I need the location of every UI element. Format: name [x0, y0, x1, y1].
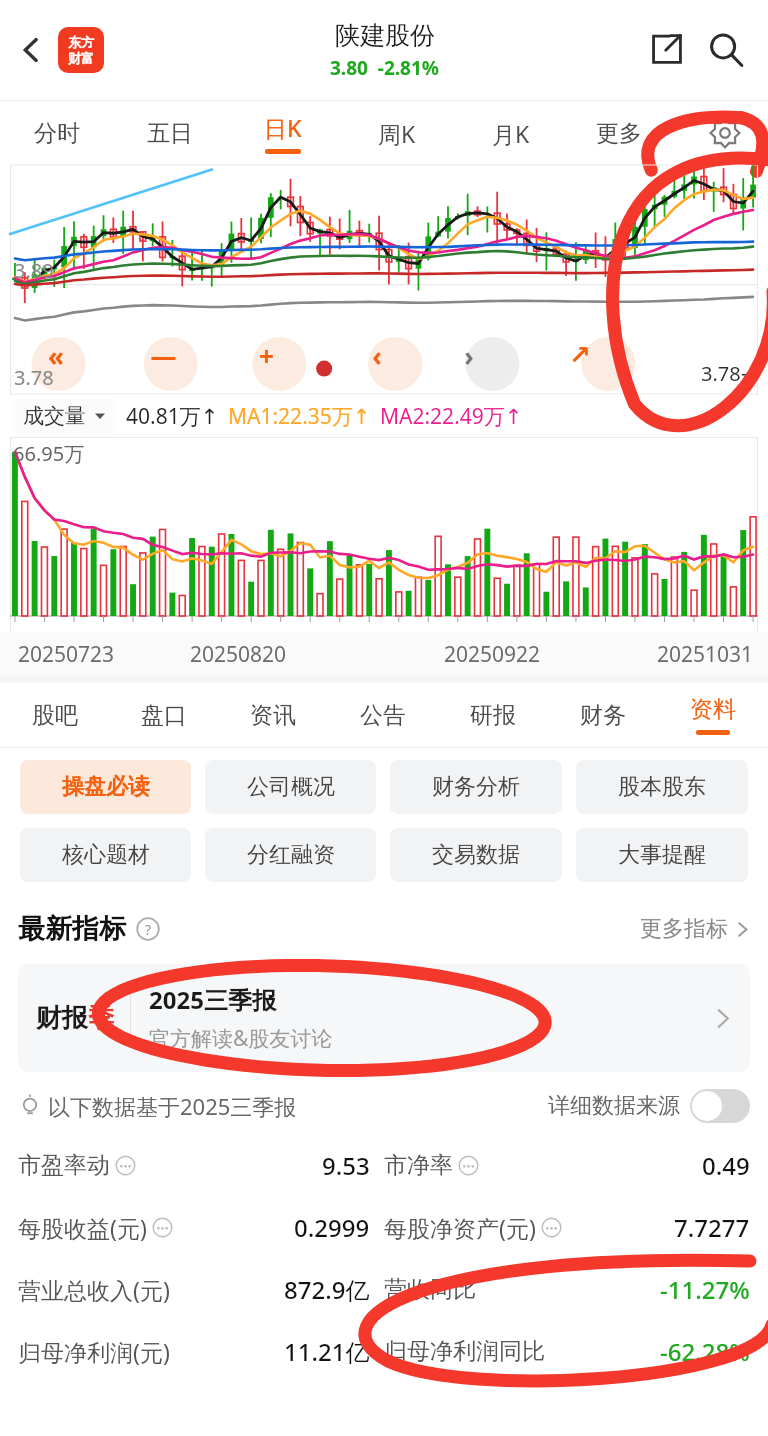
staticText: 以下数据基于2025三季报: [48, 1091, 297, 1121]
staticText: 股本股东: [618, 773, 706, 801]
button[interactable]: 月K: [454, 101, 568, 165]
staticText: 详细数据来源: [548, 1092, 680, 1120]
button[interactable]: 资讯: [218, 683, 328, 747]
button[interactable]: 资料: [658, 683, 768, 747]
staticText: 盘口: [141, 701, 187, 730]
button[interactable]: 财报: [18, 964, 750, 1072]
staticText: —: [150, 338, 177, 373]
staticText: 成交量: [23, 403, 86, 429]
staticText: 交易数据: [432, 841, 520, 869]
button[interactable]: Help: [135, 916, 161, 942]
button[interactable]: 分时: [0, 101, 113, 165]
button[interactable]: 股吧: [0, 683, 109, 747]
button[interactable]: Settings: [682, 101, 768, 165]
staticText: 五日: [147, 119, 193, 148]
button[interactable]: 财务: [548, 683, 658, 747]
button[interactable]: 公司概况: [205, 760, 376, 814]
staticText: 季: [88, 1002, 114, 1035]
staticText: 归母净利润(元): [18, 1336, 170, 1367]
staticText: 0.2999: [294, 1211, 370, 1244]
button[interactable]: 核心题材: [20, 828, 191, 882]
staticText: 研报: [470, 701, 516, 730]
button[interactable]: Chart control: [248, 337, 284, 373]
staticText: 大事提醒: [618, 841, 706, 869]
button[interactable]: 交易数据: [390, 828, 562, 882]
staticText: 财富: [68, 50, 94, 66]
button[interactable]: Chart control: [562, 337, 598, 373]
staticText: 公告: [360, 701, 406, 730]
button[interactable]: Back: [6, 25, 56, 75]
staticText: 市盈率动: [18, 1151, 110, 1180]
staticText: 20250820: [190, 640, 287, 669]
staticText: ↗: [569, 340, 591, 370]
staticText: 陕建股份: [335, 20, 435, 51]
button[interactable]: 周K: [340, 101, 454, 165]
staticText: 公司概况: [247, 773, 335, 801]
staticText: 20250922: [444, 640, 541, 669]
staticText: 市净率: [384, 1151, 453, 1180]
button[interactable]: 日K: [226, 101, 340, 165]
staticText: 3.78: [14, 364, 54, 391]
staticText: MA1:22.35万↑: [228, 402, 371, 431]
button[interactable]: 财务分析: [390, 760, 562, 814]
button[interactable]: 成交量: [12, 399, 116, 433]
staticText: 更多: [596, 119, 642, 148]
button[interactable]: 股本股东: [576, 760, 748, 814]
button[interactable]: Chart control: [359, 337, 395, 373]
button[interactable]: Chart control: [38, 337, 74, 373]
button[interactable]: 研报: [438, 683, 548, 747]
staticText: 官方解读&股友讨论: [149, 1024, 333, 1053]
staticText: 3.89: [14, 257, 54, 284]
staticText: ?: [145, 920, 152, 939]
staticText: 0.49: [702, 1149, 750, 1182]
staticText: 最新指标: [18, 912, 126, 946]
staticText: 20250723: [18, 640, 115, 669]
staticText: 财报: [36, 1002, 88, 1035]
staticText: 日K: [264, 112, 302, 143]
button[interactable]: 五日: [113, 101, 226, 165]
button[interactable]: Share: [638, 20, 696, 78]
button[interactable]: 大事提醒: [576, 828, 748, 882]
button[interactable]: 盘口: [109, 683, 218, 747]
staticText: 资料: [690, 695, 736, 724]
staticText: +: [259, 338, 274, 373]
staticText: 分红融资: [247, 841, 335, 869]
staticText: -62.28%: [660, 1335, 750, 1368]
staticText: 分时: [34, 119, 80, 148]
staticText: 核心题材: [62, 841, 150, 869]
staticText: 11.21亿: [284, 1335, 370, 1368]
staticText: 营业总收入(元): [18, 1274, 170, 1305]
button[interactable]: East Money logo: [58, 27, 104, 73]
staticText: 周K: [378, 118, 416, 149]
staticText: 872.9亿: [284, 1273, 370, 1306]
staticText: 财务: [580, 701, 626, 730]
button[interactable]: Search: [696, 20, 756, 80]
button[interactable]: 操盘必读: [20, 760, 191, 814]
button[interactable]: 公告: [328, 683, 438, 747]
staticText: 3.80 -2.81%: [330, 55, 439, 81]
staticText: 7.7277: [674, 1211, 750, 1244]
button[interactable]: Chart control: [145, 337, 181, 373]
button[interactable]: Toggle detailed data source: [690, 1089, 750, 1123]
button[interactable]: 更多指标: [640, 915, 750, 943]
staticText: 2025三季报: [149, 983, 276, 1016]
staticText: ‹: [372, 338, 382, 373]
staticText: 20251031: [657, 640, 754, 669]
button[interactable]: Chart control: [451, 337, 487, 373]
button[interactable]: 分红融资: [205, 828, 376, 882]
staticText: 资讯: [250, 701, 296, 730]
staticText: 操盘必读: [62, 773, 150, 801]
staticText: 每股收益(元): [18, 1212, 147, 1243]
staticText: «: [48, 338, 64, 373]
staticText: 营收同比: [384, 1275, 476, 1304]
staticText: ›: [464, 338, 474, 373]
staticText: 东方: [68, 34, 94, 50]
staticText: 更多指标: [640, 915, 728, 943]
staticText: 66.95万: [13, 440, 85, 467]
staticText: 股吧: [32, 701, 78, 730]
staticText: -11.27%: [660, 1273, 750, 1306]
staticText: 归母净利润同比: [384, 1337, 545, 1366]
button[interactable]: 更多: [568, 101, 682, 165]
staticText: 每股净资产(元): [384, 1212, 536, 1243]
staticText: 月K: [492, 118, 530, 149]
